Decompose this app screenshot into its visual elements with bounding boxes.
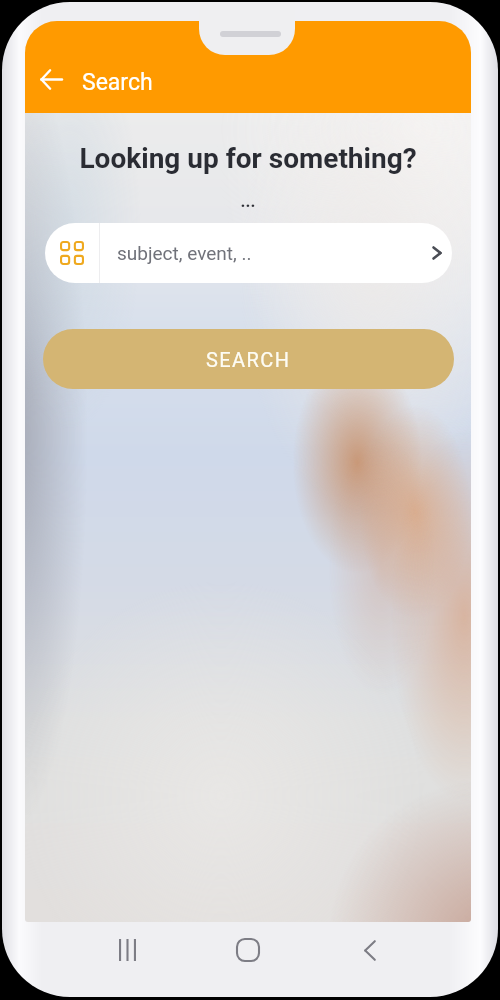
staticText: SEARCH <box>206 348 291 371</box>
button[interactable]: subject, event, .. <box>45 223 452 283</box>
staticText: Search <box>82 69 153 96</box>
staticText: ... <box>25 191 471 211</box>
button[interactable]: Back <box>348 928 392 972</box>
button[interactable]: Recent apps <box>105 928 149 972</box>
button[interactable]: Back <box>28 56 74 102</box>
staticText: subject, event, .. <box>117 242 422 264</box>
button[interactable]: SEARCH <box>43 329 454 389</box>
button[interactable]: Home <box>226 928 270 972</box>
staticText: Looking up for something? <box>25 142 471 175</box>
